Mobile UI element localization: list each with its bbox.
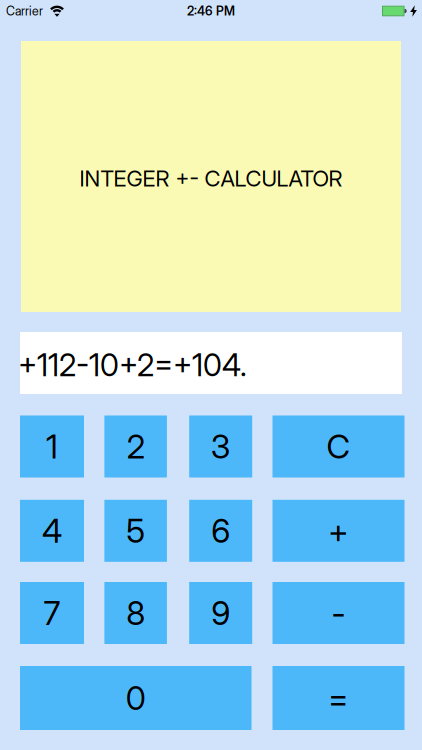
button[interactable]: 5	[104, 500, 167, 562]
staticText: 5	[126, 511, 145, 550]
button[interactable]: 7	[20, 582, 84, 644]
button[interactable]: 4	[20, 500, 84, 562]
staticText: 9	[211, 593, 230, 633]
button[interactable]: 1	[20, 415, 84, 477]
staticText: 7	[43, 593, 60, 633]
button[interactable]: =	[272, 666, 404, 730]
button[interactable]: 2	[104, 415, 167, 477]
staticText: 3	[211, 427, 231, 466]
button[interactable]: 6	[189, 500, 252, 562]
staticText: 8	[126, 593, 145, 633]
button[interactable]: 9	[189, 582, 252, 644]
staticText: +	[328, 511, 349, 550]
staticText: =	[328, 678, 349, 718]
staticText: 0	[126, 678, 146, 718]
staticText: -	[331, 593, 345, 633]
button[interactable]: 3	[189, 415, 252, 477]
staticText: 2	[127, 427, 145, 466]
staticText: C	[326, 427, 350, 466]
staticText: INTEGER +- CALCULATOR	[79, 165, 342, 192]
staticText: 2:46 PM	[187, 3, 235, 18]
button[interactable]: -	[272, 582, 404, 644]
button[interactable]: C	[272, 415, 404, 477]
staticText: 6	[211, 511, 230, 550]
staticText: Carrier	[6, 3, 43, 18]
button[interactable]: 0	[20, 666, 251, 730]
staticText: 4	[42, 511, 62, 550]
button[interactable]: +	[272, 500, 404, 562]
button[interactable]: 8	[104, 582, 167, 644]
staticText: 1	[46, 427, 58, 466]
staticText: +112-10+2=+104.	[18, 346, 247, 383]
